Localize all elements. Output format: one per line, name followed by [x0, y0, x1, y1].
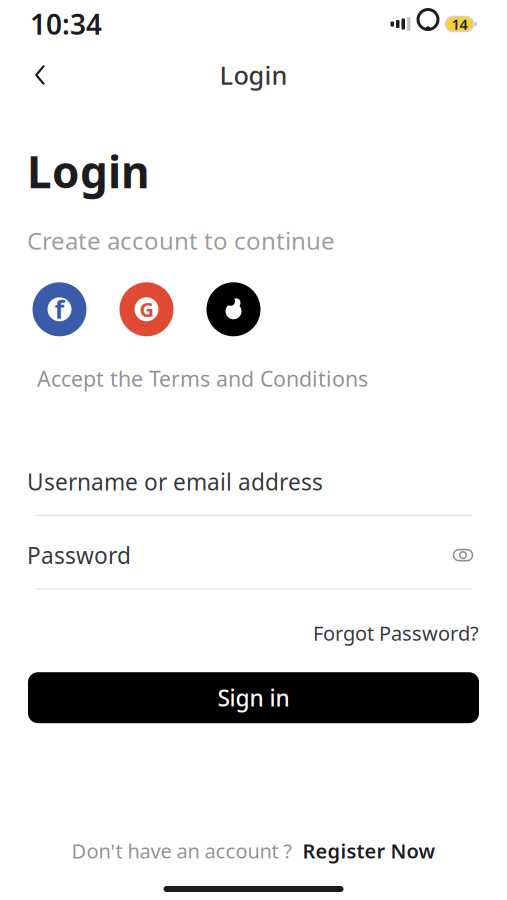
staticText: Username or email address [27, 467, 323, 497]
button[interactable]: Show password [446, 541, 480, 569]
staticText: 14 [451, 14, 467, 34]
button[interactable]: Back [18, 53, 62, 97]
staticText: Accept the Terms and Conditions [37, 364, 368, 393]
button[interactable]: Continue with Facebook [26, 282, 93, 336]
staticText: G [139, 296, 153, 323]
button[interactable]: Forgot Password? [313, 614, 479, 652]
staticText: Register Now [302, 837, 435, 864]
staticText: Password [27, 540, 131, 570]
staticText: Login [219, 58, 287, 92]
staticText: 10:34 [30, 5, 102, 43]
staticText: Sign in [217, 683, 289, 713]
staticText: Login [27, 142, 150, 200]
button[interactable]: Sign in [28, 672, 479, 723]
button[interactable]: Continue with Google [113, 282, 180, 336]
button[interactable]: Don't have an account ? [71, 831, 435, 870]
staticText: Don't have an account ? [71, 837, 292, 864]
staticText: Forgot Password? [313, 620, 479, 646]
staticText: Create account to continue [27, 224, 335, 256]
button[interactable]: Continue with Apple [200, 282, 267, 336]
staticText: f [54, 292, 64, 326]
